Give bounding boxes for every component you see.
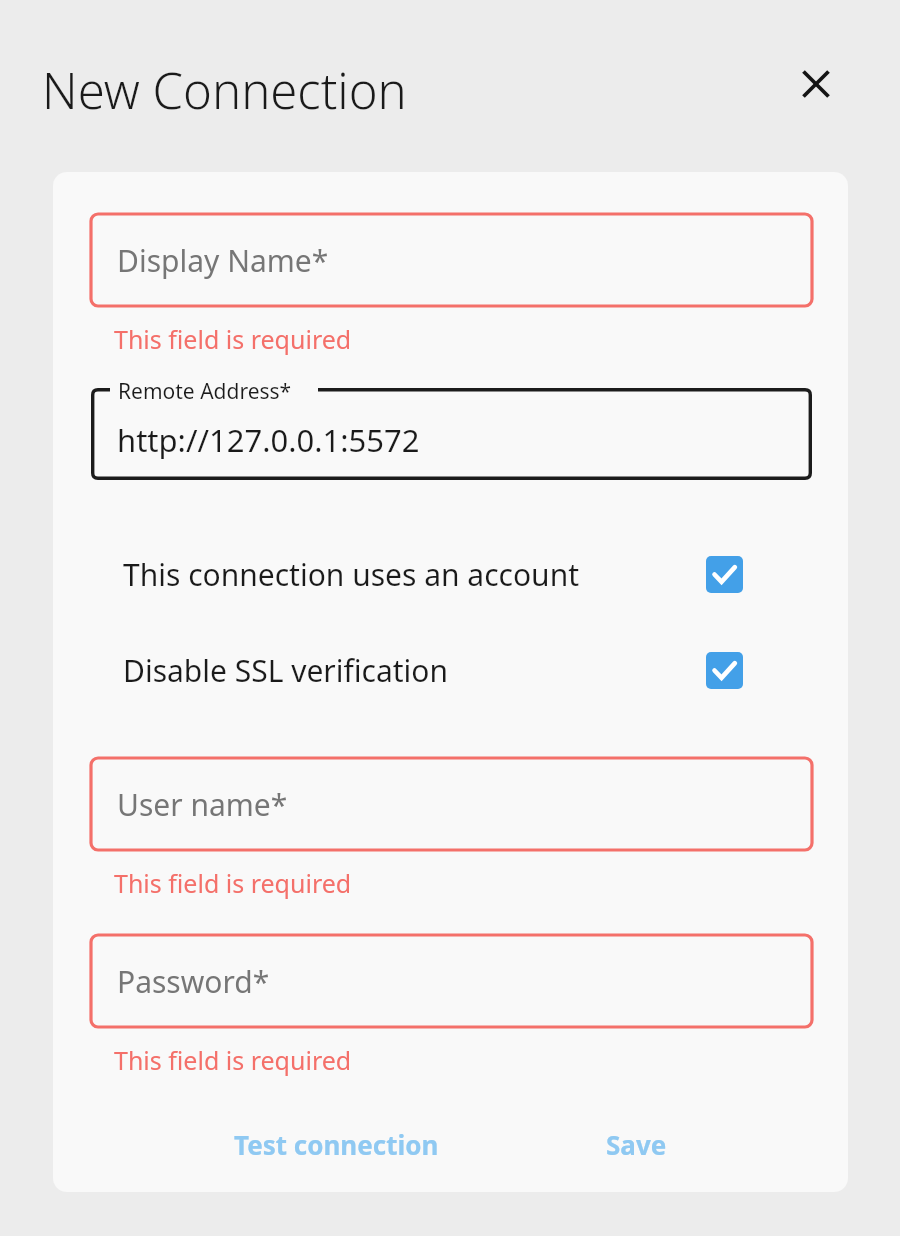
staticText: This field is required [114,866,352,900]
button[interactable]: Close [784,52,848,116]
staticText: This connection uses an account [123,554,579,595]
button[interactable]: http://127.0.0.1:5572 [91,388,812,480]
staticText: New Connection [42,57,407,124]
button[interactable]: Password* [91,935,812,1027]
button[interactable]: This connection uses an account [104,538,764,610]
staticText: This field is required [114,322,352,356]
staticText: http://127.0.0.1:5572 [117,419,420,461]
staticText: Password* [117,961,270,1002]
staticText: This field is required [114,1043,352,1077]
button[interactable]: Disable SSL verification [104,634,764,706]
staticText: Save [606,1127,667,1162]
staticText: Remote Address* [118,377,292,406]
staticText: Test connection [234,1127,439,1162]
staticText: Disable SSL verification [123,650,449,691]
button[interactable]: Display Name* [91,214,812,306]
button[interactable]: User name* [91,758,812,850]
button[interactable]: Test connection [206,1110,466,1178]
staticText: User name* [117,784,288,825]
staticText: Display Name* [117,240,329,281]
button[interactable]: Save [556,1110,716,1178]
